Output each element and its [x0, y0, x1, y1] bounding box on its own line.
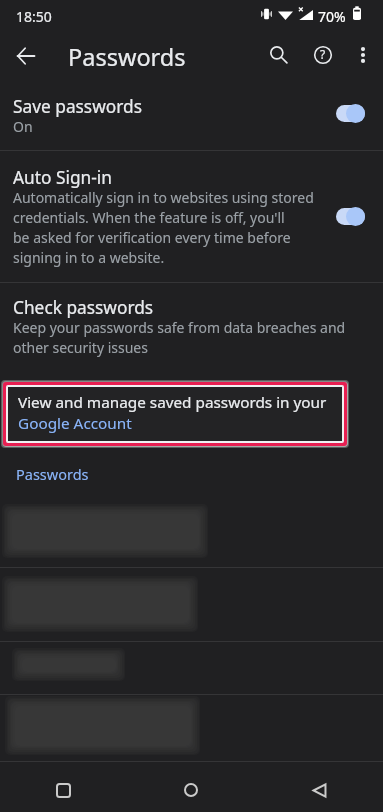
button[interactable]: [0, 695, 383, 761]
staticText: Save passwords: [13, 95, 142, 119]
staticText: Auto Sign-in: [13, 166, 112, 190]
button[interactable]: [0, 495, 383, 567]
staticText: On: [13, 117, 33, 136]
staticText: Passwords: [68, 41, 186, 73]
button[interactable]: [0, 642, 383, 694]
staticText: View and manage saved passwords in your: [18, 392, 327, 413]
staticText: 70%: [318, 7, 346, 26]
button[interactable]: Home: [127, 768, 255, 812]
staticText: Google Account: [18, 413, 132, 434]
staticText: Automatically sign in to websites using …: [13, 188, 373, 267]
button[interactable]: Back: [255, 768, 383, 812]
button[interactable]: Recents: [0, 768, 127, 812]
button[interactable]: More options: [340, 32, 383, 78]
button[interactable]: Save passwords: [0, 88, 383, 150]
button[interactable]: [0, 568, 383, 641]
button[interactable]: Back: [2, 32, 50, 80]
button[interactable]: Help: [300, 32, 346, 78]
button[interactable]: Check passwords: [0, 292, 383, 368]
staticText: Passwords: [16, 464, 89, 484]
staticText: Check passwords: [13, 296, 154, 320]
button[interactable]: [8, 387, 342, 441]
staticText: Keep your passwords safe from data breac…: [13, 318, 383, 357]
button[interactable]: Auto Sign-in: [0, 155, 383, 281]
button[interactable]: Search: [256, 32, 302, 78]
staticText: 18:50: [16, 7, 52, 26]
staticText: ?: [320, 46, 326, 62]
